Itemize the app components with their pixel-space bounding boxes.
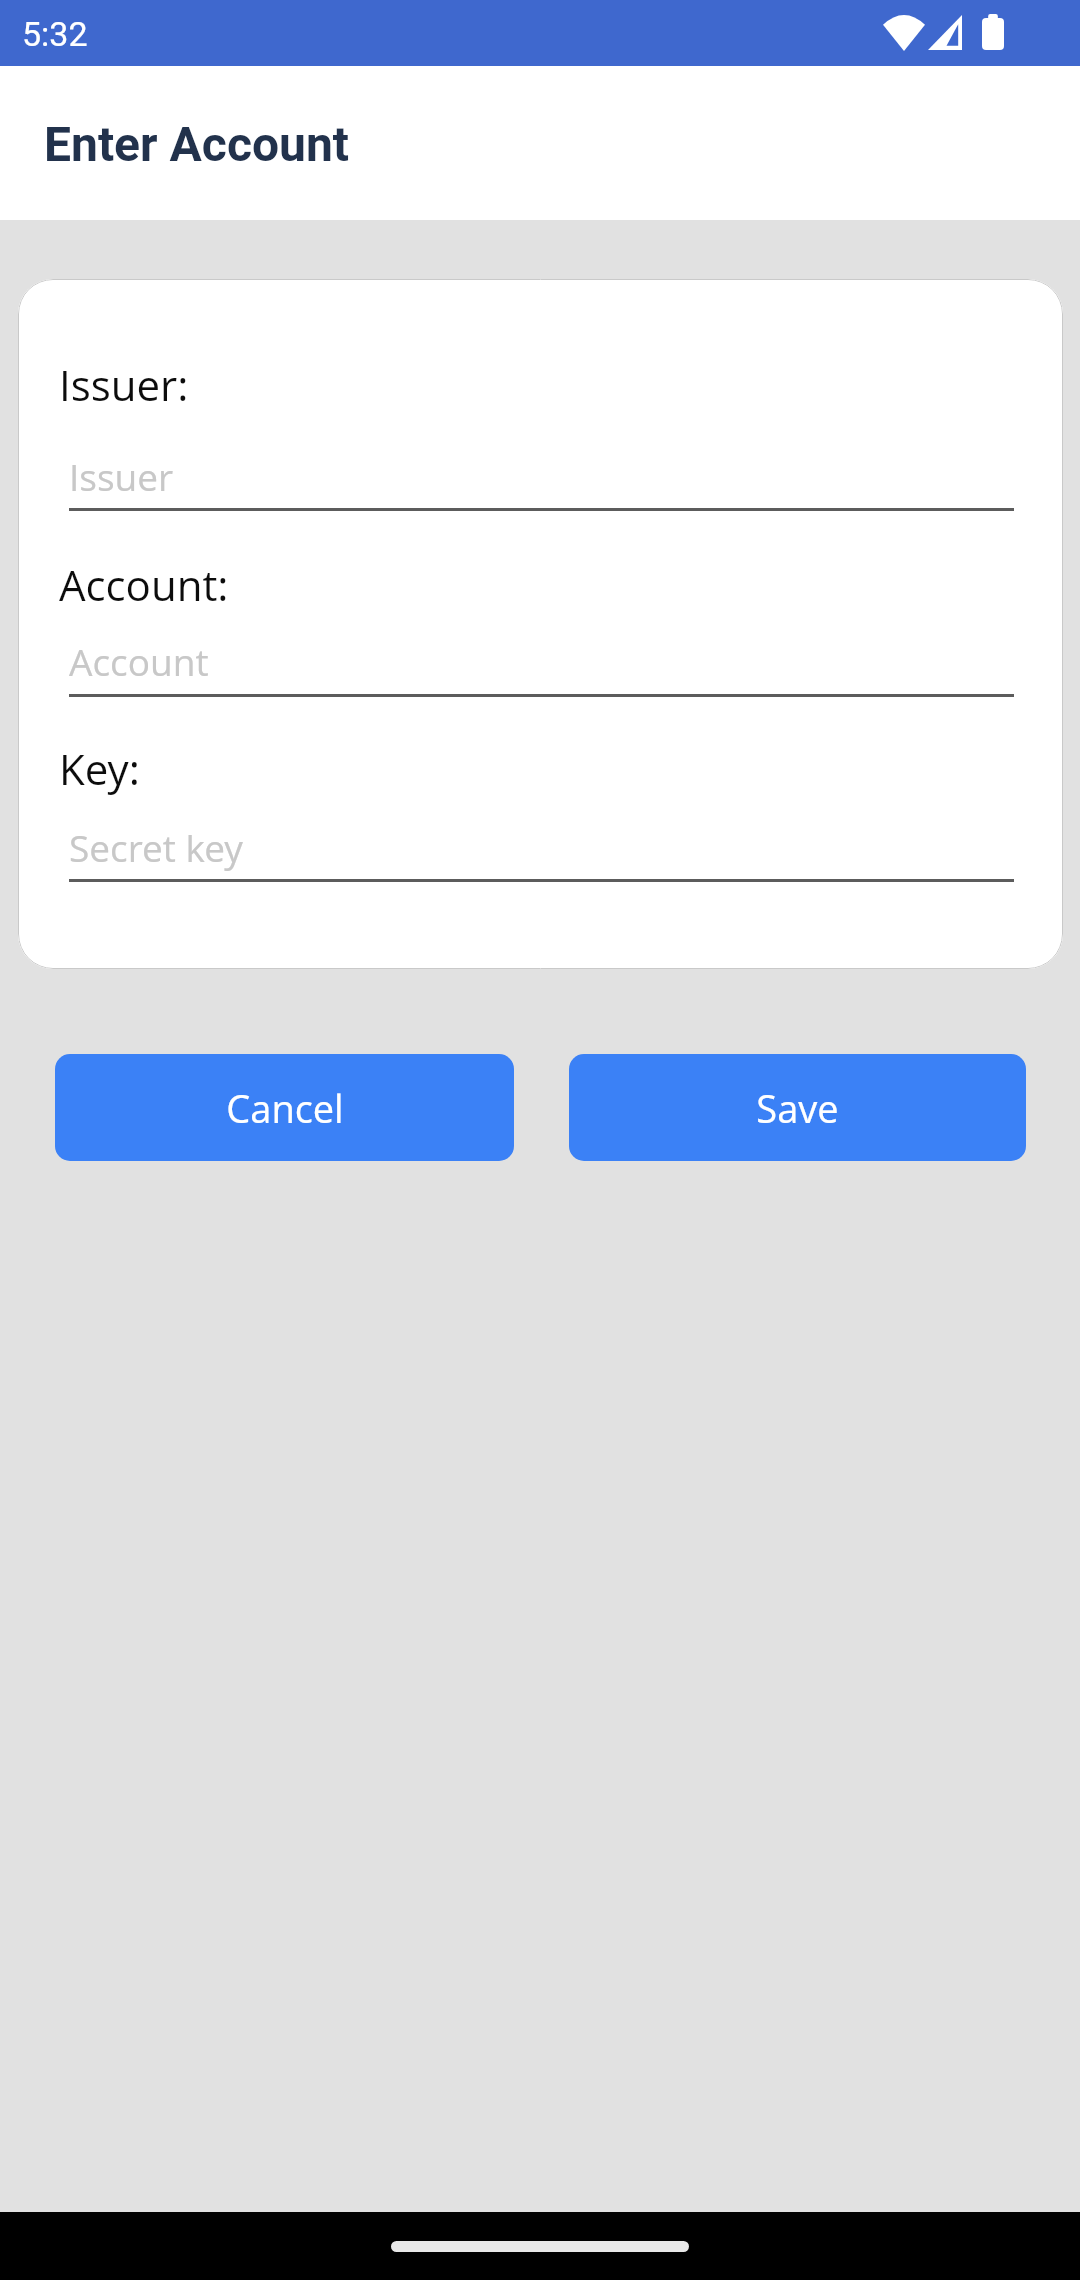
staticText: Save [756,1082,839,1134]
button[interactable]: Account [69,608,1014,700]
staticText: 5:32 [22,14,88,54]
button[interactable]: Secret key [69,794,1014,886]
staticText: Secret key [69,822,243,872]
staticText: Issuer: [59,356,189,413]
other: Mobile signal [928,15,962,50]
staticText: Account: [59,556,229,613]
other: Wi-Fi signal [883,15,925,51]
staticText: Key: [59,740,140,797]
button[interactable]: Issuer [69,423,1014,515]
button[interactable]: Save [569,1054,1026,1161]
staticText: Enter Account [44,116,350,172]
staticText: Cancel [226,1082,344,1134]
staticText: Account [69,636,209,686]
button[interactable]: Cancel [55,1054,514,1161]
staticText: Issuer [69,451,174,501]
other: Battery [982,14,1004,50]
